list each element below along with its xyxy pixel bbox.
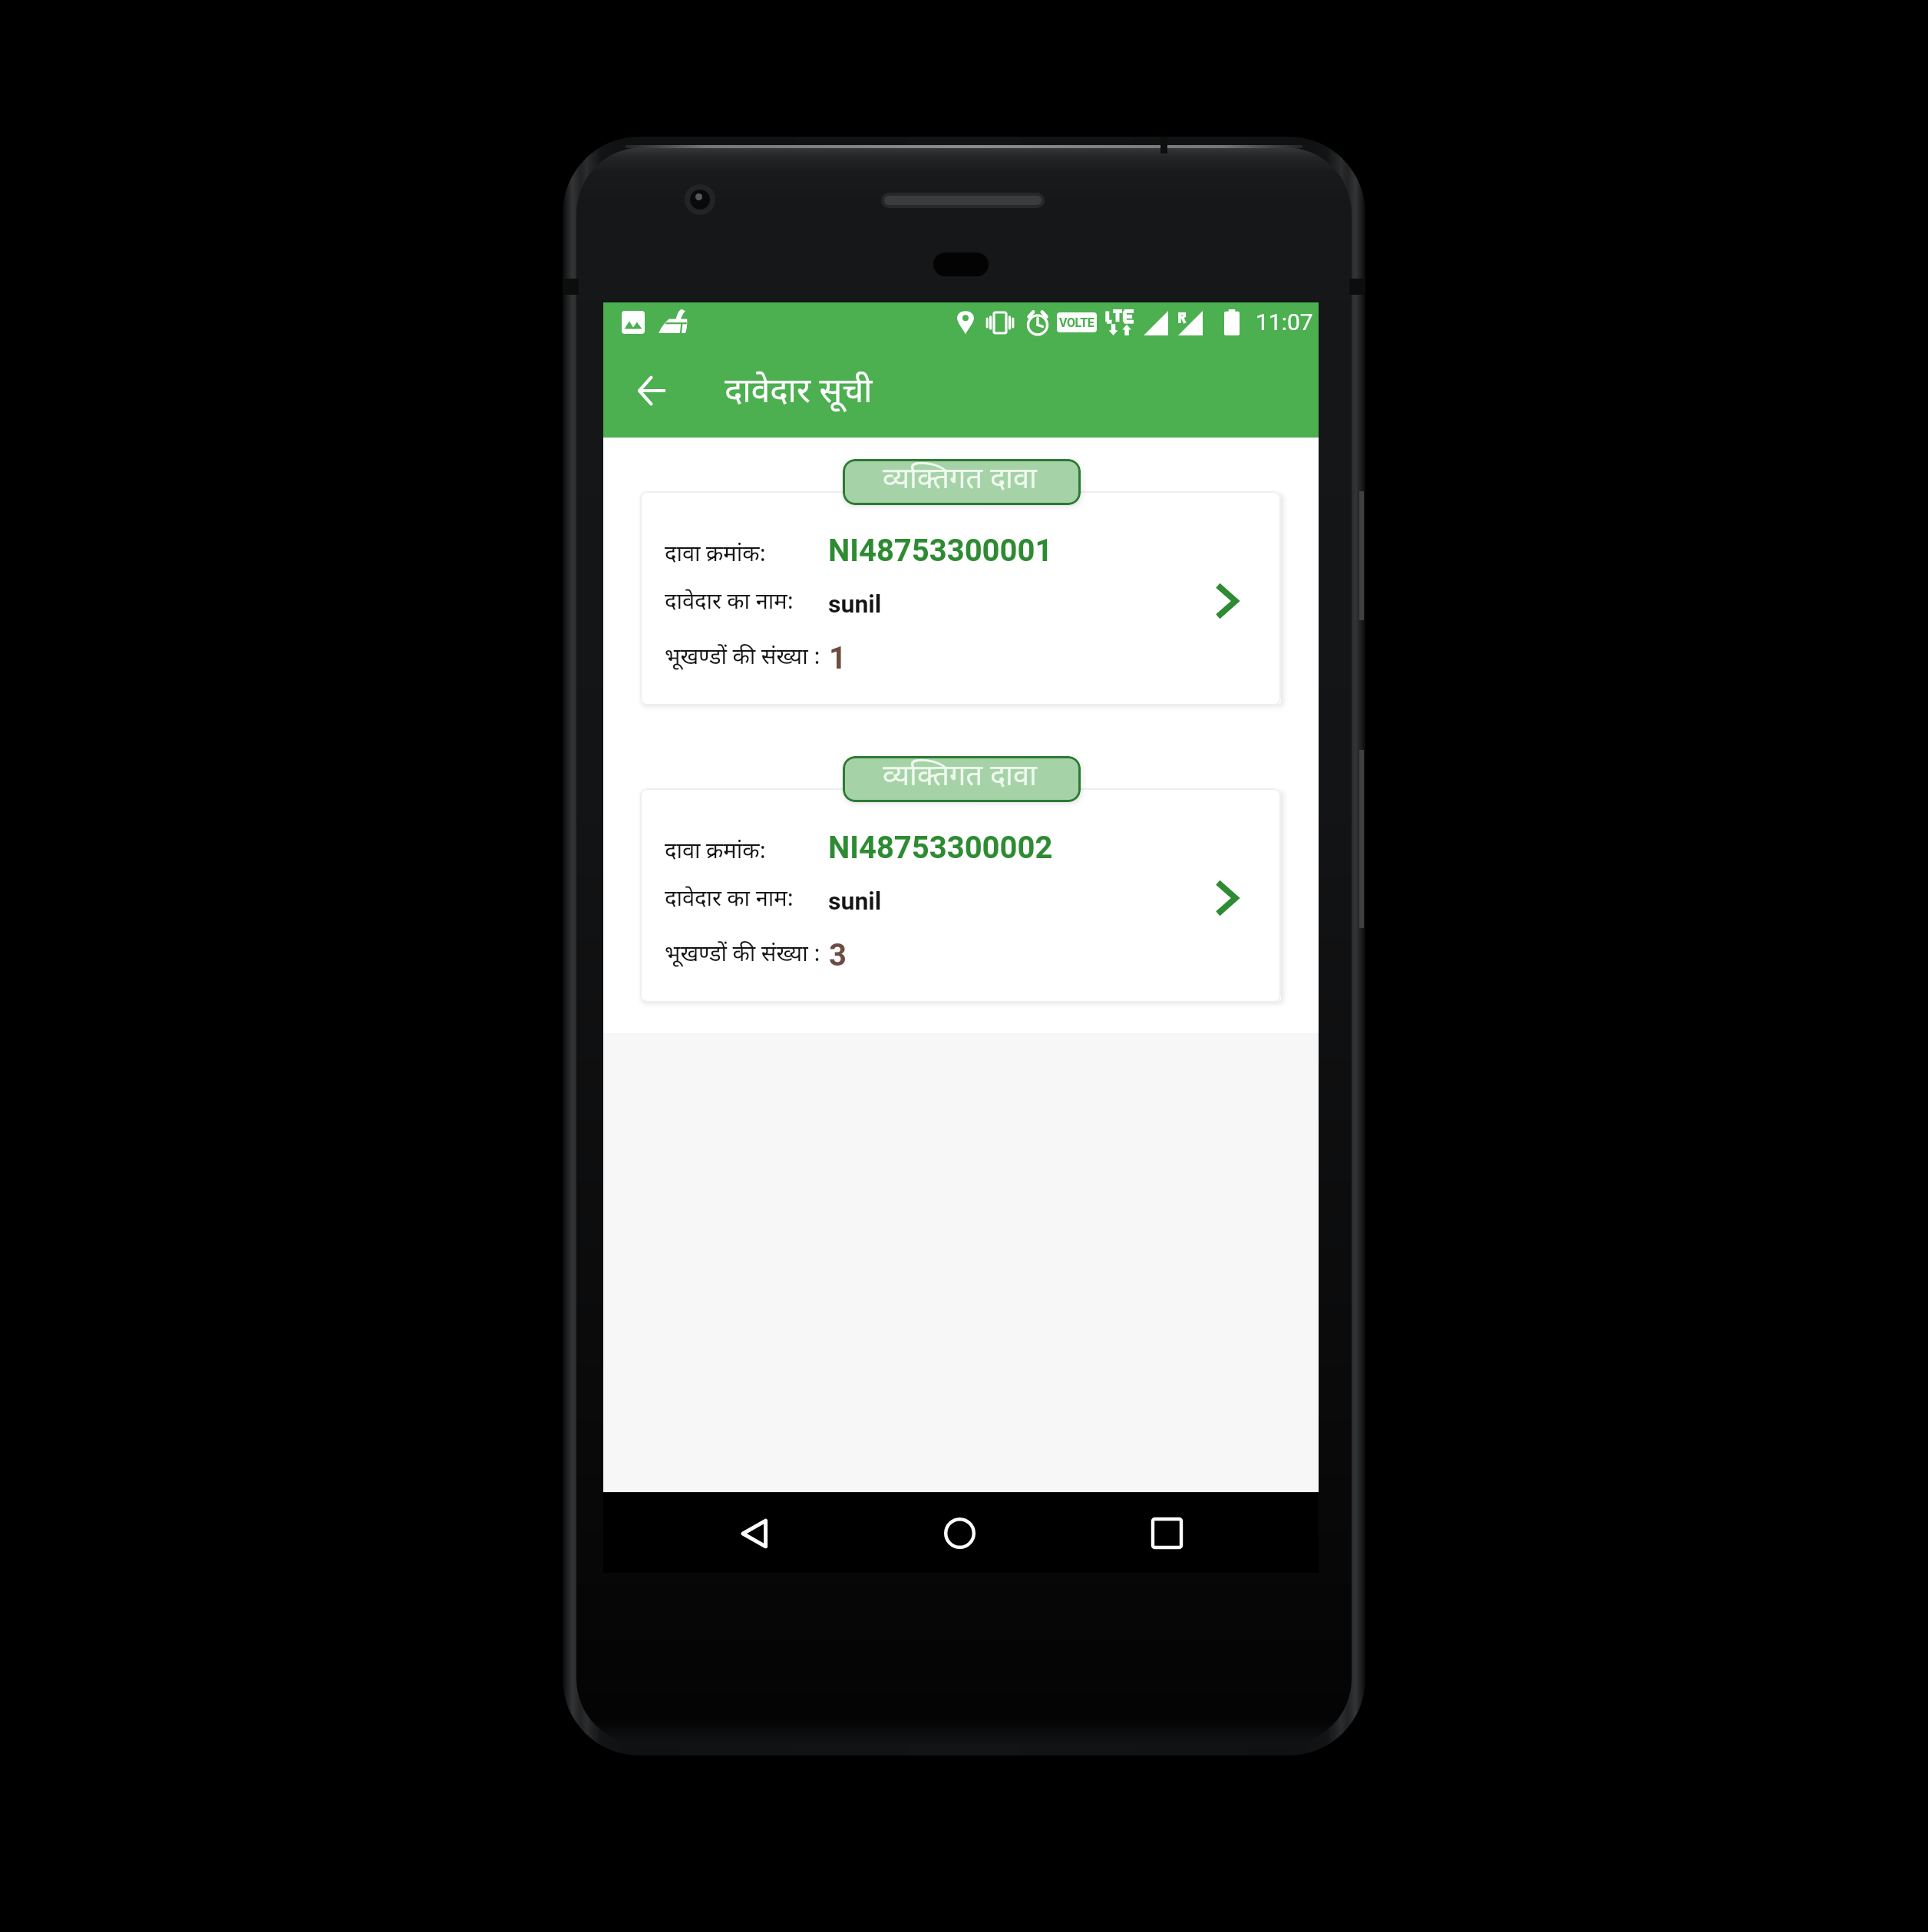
staticText: NI48753300001 [828,533,1053,569]
staticText: दावेदार का नाम: [665,589,794,618]
staticText: VOLTE [1059,315,1094,330]
staticText: sunil [828,887,882,916]
button[interactable]: Back [617,356,686,425]
staticText: भूखण्डों की संख्या : [665,941,820,970]
button[interactable]: View claim details [1196,865,1257,926]
staticText: व्यक्तिगत दावा [883,759,1037,798]
button[interactable]: दावा क्रमांक: [640,491,1281,705]
staticText: 11:07 [1256,309,1313,335]
staticText: दावा क्रमांक: [665,541,767,570]
button[interactable]: दावा क्रमांक: [640,788,1281,1002]
staticText: 1 [829,640,847,676]
button[interactable]: व्यक्तिगत दावा [843,459,1081,505]
button[interactable]: View claim details [1196,568,1257,629]
button[interactable]: व्यक्तिगत दावा [843,756,1081,802]
button[interactable]: Back [716,1492,793,1573]
staticText: दावा क्रमांक: [665,838,767,867]
staticText: दावेदार सूची [725,372,873,416]
staticText: व्यक्तिगत दावा [883,462,1037,500]
staticText: भूखण्डों की संख्या : [665,644,820,673]
staticText: sunil [828,590,882,619]
button[interactable]: Recents [1128,1492,1205,1573]
staticText: दावेदार का नाम: [665,886,794,915]
staticText: NI48753300002 [828,830,1053,866]
button[interactable]: Home [921,1492,998,1573]
staticText: 3 [829,937,847,973]
